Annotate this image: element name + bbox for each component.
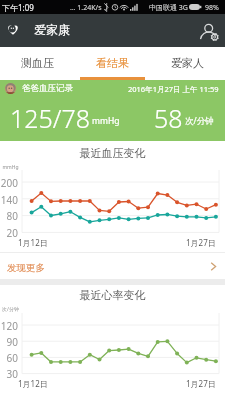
staticText: 1月12日 <box>18 237 48 248</box>
staticText: mmHg <box>0 164 21 171</box>
staticText: 1月12日 <box>18 378 48 389</box>
staticText: 58 <box>154 101 183 135</box>
staticText: 20 <box>0 226 18 240</box>
staticText: 测血压 <box>21 56 54 70</box>
staticText: 爸爸血压记录 <box>22 83 73 94</box>
staticText: 最近血压变化 <box>0 146 225 160</box>
staticText: 看结果 <box>96 56 129 70</box>
staticText: 下午1:09 <box>2 2 34 13</box>
staticText: 125/78 <box>10 101 91 135</box>
staticText: 80 <box>0 209 18 223</box>
staticText: 最近心率变化 <box>0 288 225 302</box>
staticText: 发现更多 <box>7 262 45 274</box>
button[interactable]: 爱家人 <box>150 47 225 80</box>
staticText: 爱家康 <box>34 22 70 37</box>
staticText: 200 <box>0 176 18 190</box>
button[interactable]: 家人设置 <box>197 21 220 43</box>
staticText: … 1.24K/s <box>70 3 102 13</box>
button[interactable]: 看结果 <box>75 47 150 80</box>
staticText: 次/分钟 <box>185 115 214 127</box>
button[interactable]: 测血压 <box>0 47 75 80</box>
staticText: 中国联通 3G <box>149 3 188 13</box>
staticText: 1月27日 <box>186 237 216 248</box>
button[interactable]: 发现更多 <box>0 253 225 279</box>
staticText: 爱家人 <box>171 56 204 70</box>
staticText: 30 <box>0 367 18 381</box>
staticText: mmHg <box>92 115 120 127</box>
staticText: 90 <box>0 335 18 349</box>
staticText: 2016年1月27日 上午 11:59 <box>128 84 219 94</box>
staticText: 次/分钟 <box>0 306 21 313</box>
staticText: 1月27日 <box>186 378 216 389</box>
staticText: 60 <box>0 351 18 365</box>
staticText: 98% <box>205 3 219 13</box>
staticText: 120 <box>0 319 18 333</box>
staticText: 140 <box>0 193 18 207</box>
